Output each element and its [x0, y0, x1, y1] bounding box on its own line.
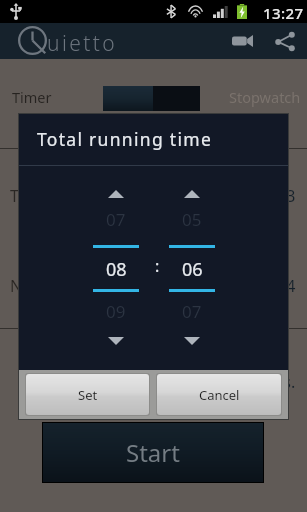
staticText: 08	[106, 257, 127, 282]
button[interactable]: Start	[43, 423, 263, 482]
staticText: 06	[182, 257, 203, 282]
staticText: 07	[182, 300, 202, 323]
button[interactable]: Set	[26, 374, 149, 415]
staticText: Total running time	[10, 185, 149, 205]
staticText: Start	[126, 436, 180, 469]
staticText: Timer	[12, 87, 52, 107]
staticText: Stopwatch	[229, 87, 301, 107]
staticText: 14	[277, 275, 296, 295]
staticText: 13:27	[263, 3, 304, 23]
staticText: Total running time	[37, 127, 213, 151]
staticText: uietto	[47, 29, 118, 58]
button[interactable]: Increase	[169, 179, 215, 209]
button[interactable]: Increase	[93, 179, 139, 209]
button[interactable]: Total running time	[0, 185, 307, 205]
button[interactable]: Cancel	[157, 374, 281, 415]
button[interactable]: Number of sounds	[0, 275, 307, 295]
staticText: Set	[78, 386, 98, 404]
staticText: 08:06:43	[232, 185, 296, 205]
button[interactable]: Decrease	[93, 326, 139, 356]
staticText: 3 s.	[270, 371, 296, 391]
button[interactable]: Decrease	[169, 326, 215, 356]
staticText: 07	[106, 208, 126, 231]
staticText: Number of sounds	[10, 275, 151, 295]
button[interactable]: Share	[264, 23, 305, 59]
staticText: :	[155, 255, 160, 277]
staticText: Cancel	[199, 386, 240, 404]
button[interactable]: 3 s.	[0, 371, 307, 391]
staticText: 05	[182, 208, 202, 231]
staticText: 09	[106, 300, 126, 323]
button[interactable]: Record video	[222, 23, 263, 59]
button[interactable]: Timer / Stopwatch toggle	[103, 86, 200, 111]
